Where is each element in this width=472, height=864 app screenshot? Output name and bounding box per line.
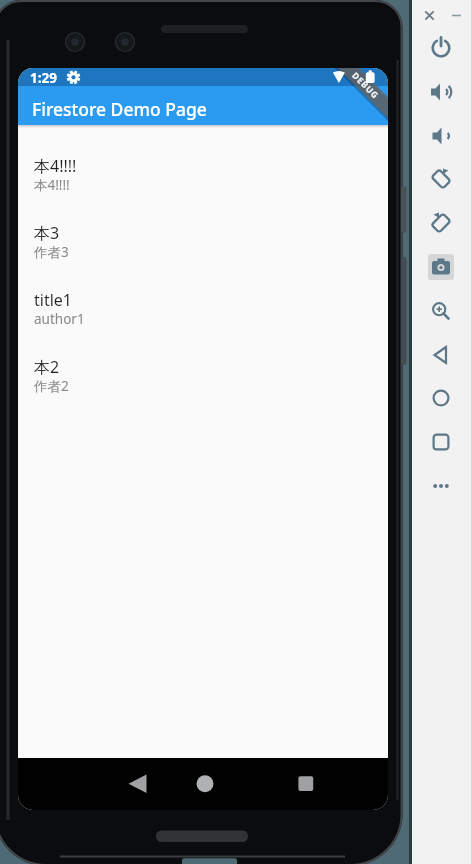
staticText: 1:29 [30, 69, 57, 87]
staticText: Firestore Demo Page [32, 97, 207, 121]
button[interactable] [421, 7, 438, 24]
staticText: 本4!!!! [34, 155, 77, 177]
button[interactable] [425, 470, 457, 502]
staticText: 本3 [34, 222, 60, 244]
button[interactable] [425, 295, 457, 327]
button[interactable] [265, 758, 388, 810]
button[interactable] [425, 207, 457, 239]
button[interactable] [425, 426, 457, 458]
staticText: DEBUG [349, 70, 382, 102]
button[interactable] [425, 382, 457, 414]
button[interactable]: 本3 [18, 217, 388, 284]
button[interactable] [425, 32, 457, 64]
button[interactable]: 本2 [18, 351, 388, 418]
staticText: 作者3 [34, 243, 69, 261]
staticText: 本2 [34, 356, 60, 378]
staticText: title1 [34, 289, 72, 311]
button[interactable] [425, 120, 457, 152]
button[interactable] [425, 76, 457, 108]
staticText: 作者2 [34, 377, 69, 395]
staticText: 本4!!!! [34, 176, 70, 194]
button[interactable]: 本4!!!! [18, 150, 388, 217]
staticText: author1 [34, 310, 85, 328]
button[interactable] [425, 339, 457, 371]
button[interactable] [142, 758, 265, 810]
button[interactable] [18, 758, 142, 810]
button[interactable]: title1 [18, 284, 388, 351]
button[interactable] [425, 251, 457, 283]
button[interactable] [425, 163, 457, 195]
button[interactable] [448, 7, 465, 24]
